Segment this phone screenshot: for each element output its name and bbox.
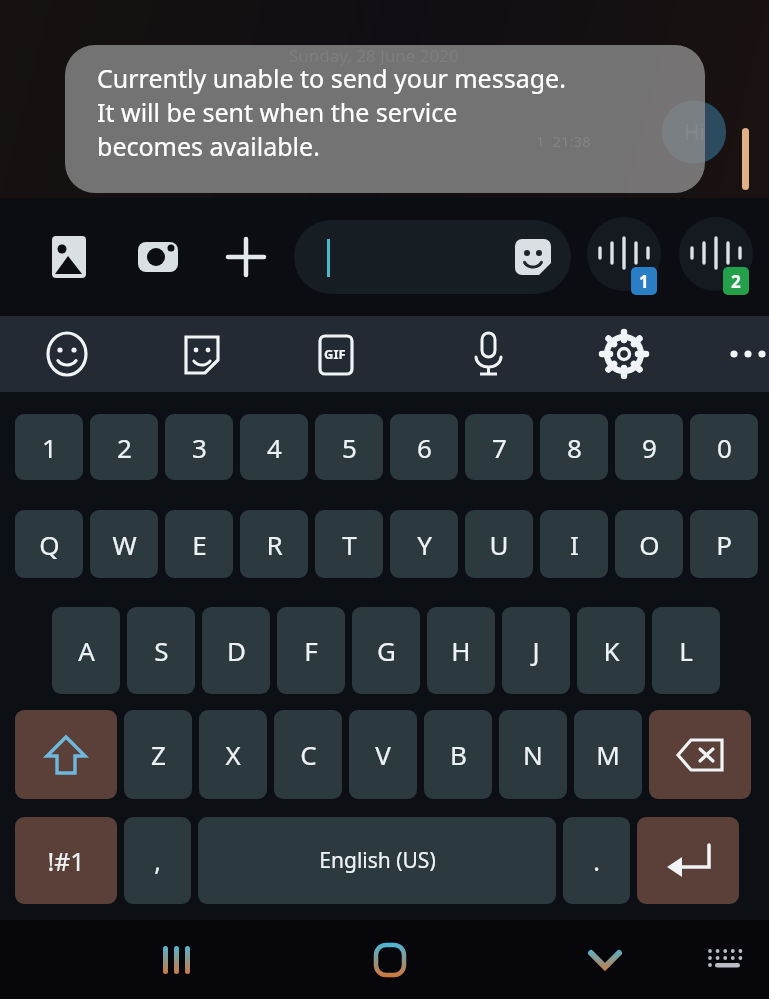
button[interactable]: F bbox=[277, 607, 345, 694]
staticText: 0 bbox=[717, 430, 732, 465]
button[interactable]: Stickers bbox=[511, 235, 555, 279]
button[interactable]: 4 bbox=[240, 414, 308, 480]
button[interactable]: Home bbox=[355, 920, 425, 999]
staticText: 1 21:38 bbox=[536, 131, 591, 151]
staticText: V bbox=[375, 737, 391, 772]
button[interactable]: G bbox=[352, 607, 420, 694]
button[interactable]: C bbox=[274, 710, 342, 799]
staticText: K bbox=[603, 633, 620, 668]
button[interactable]: !#1 bbox=[15, 817, 117, 904]
button[interactable]: Recents bbox=[140, 920, 210, 999]
button[interactable]: P bbox=[690, 510, 758, 578]
staticText: P bbox=[716, 527, 732, 562]
button[interactable]: Voice input bbox=[466, 329, 510, 379]
button[interactable]: S bbox=[127, 607, 195, 694]
staticText: Hi bbox=[684, 118, 705, 147]
button[interactable]: T bbox=[315, 510, 383, 578]
staticText: 2 bbox=[731, 270, 741, 293]
button[interactable]: 8 bbox=[540, 414, 608, 480]
staticText: 4 bbox=[267, 430, 282, 465]
button[interactable]: W bbox=[90, 510, 158, 578]
staticText: Currently unable to send your message. bbox=[97, 61, 566, 95]
button[interactable]: M bbox=[574, 710, 642, 799]
button[interactable]: 0 bbox=[690, 414, 758, 480]
button[interactable]: More options bbox=[726, 339, 769, 369]
button[interactable]: U bbox=[465, 510, 533, 578]
button[interactable] bbox=[649, 710, 751, 799]
staticText: B bbox=[450, 737, 467, 772]
staticText: English (US) bbox=[319, 846, 436, 875]
button[interactable]: Sticker bbox=[179, 330, 225, 378]
button[interactable]: X bbox=[199, 710, 267, 799]
button[interactable]: Camera bbox=[134, 234, 182, 280]
button[interactable]: A bbox=[52, 607, 120, 694]
staticText: X bbox=[225, 737, 241, 772]
button[interactable]: O bbox=[615, 510, 683, 578]
button[interactable]: . bbox=[563, 817, 630, 904]
button[interactable]: Currently unable to send your message. bbox=[65, 45, 705, 193]
button[interactable] bbox=[15, 710, 117, 799]
button[interactable]: GIF bbox=[314, 330, 358, 378]
button[interactable]: Voice note 2 bbox=[677, 215, 755, 299]
staticText: 9 bbox=[642, 430, 657, 465]
button[interactable] bbox=[637, 817, 739, 904]
button[interactable]: Z bbox=[124, 710, 192, 799]
staticText: U bbox=[489, 527, 509, 562]
button[interactable]: Y bbox=[390, 510, 458, 578]
staticText: R bbox=[266, 527, 283, 562]
staticText: T bbox=[342, 527, 357, 562]
staticText: A bbox=[78, 633, 95, 668]
button[interactable]: Add attachment bbox=[222, 233, 270, 281]
staticText: becomes available. bbox=[97, 129, 320, 163]
staticText: F bbox=[304, 633, 318, 668]
staticText: H bbox=[451, 633, 471, 668]
button[interactable]: Keyboard settings bbox=[600, 330, 648, 378]
button[interactable]: D bbox=[202, 607, 270, 694]
button[interactable]: 3 bbox=[165, 414, 233, 480]
button[interactable]: Hide keyboard bbox=[570, 920, 640, 999]
button[interactable]: B bbox=[424, 710, 492, 799]
button[interactable]: Q bbox=[15, 510, 83, 578]
button[interactable]: 1 bbox=[15, 414, 83, 480]
staticText: C bbox=[300, 737, 317, 772]
staticText: I bbox=[570, 527, 579, 562]
staticText: It will be sent when the service bbox=[97, 95, 458, 129]
button[interactable]: I bbox=[540, 510, 608, 578]
button[interactable]: K bbox=[577, 607, 645, 694]
button[interactable]: E bbox=[165, 510, 233, 578]
button[interactable]: Voice note 1 bbox=[585, 215, 663, 299]
button[interactable]: 9 bbox=[615, 414, 683, 480]
staticText: 7 bbox=[492, 430, 507, 465]
button[interactable]: English (US) bbox=[198, 817, 556, 904]
button[interactable]: V bbox=[349, 710, 417, 799]
button[interactable]: 7 bbox=[465, 414, 533, 480]
button[interactable]: N bbox=[499, 710, 567, 799]
staticText: L bbox=[679, 633, 693, 668]
staticText: S bbox=[154, 633, 169, 668]
button[interactable]: Stickers bbox=[294, 220, 571, 294]
staticText: !#1 bbox=[47, 844, 85, 878]
staticText: O bbox=[639, 527, 660, 562]
staticText: GIF bbox=[324, 345, 346, 363]
staticText: Y bbox=[417, 527, 432, 562]
button[interactable]: 5 bbox=[315, 414, 383, 480]
button[interactable]: 2 bbox=[90, 414, 158, 480]
staticText: 8 bbox=[567, 430, 582, 465]
staticText: N bbox=[523, 737, 543, 772]
staticText: 1 bbox=[42, 430, 57, 465]
staticText: W bbox=[112, 527, 137, 562]
button[interactable]: R bbox=[240, 510, 308, 578]
button[interactable]: Gallery bbox=[46, 234, 92, 280]
button[interactable]: Emoji bbox=[44, 331, 90, 377]
button[interactable]: J bbox=[502, 607, 570, 694]
button[interactable]: 6 bbox=[390, 414, 458, 480]
staticText: Z bbox=[151, 737, 166, 772]
button[interactable]: L bbox=[652, 607, 720, 694]
staticText: 5 bbox=[342, 430, 357, 465]
staticText: 6 bbox=[417, 430, 432, 465]
button[interactable]: Switch keyboard bbox=[690, 920, 760, 999]
staticText: J bbox=[532, 633, 540, 668]
button[interactable]: H bbox=[427, 607, 495, 694]
staticText: . bbox=[593, 844, 600, 878]
button[interactable]: , bbox=[124, 817, 191, 904]
